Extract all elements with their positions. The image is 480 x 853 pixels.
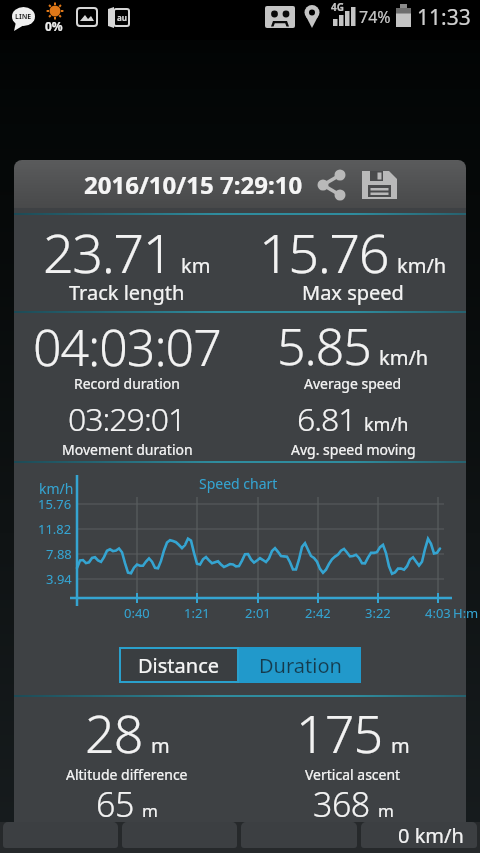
staticText: 2:42 <box>305 604 331 622</box>
staticText: m <box>142 799 158 822</box>
staticText: 1:21 <box>184 604 210 622</box>
staticText: m <box>378 799 394 822</box>
staticText: 23.71 <box>43 215 173 279</box>
staticText: 03:29:01 <box>68 397 186 437</box>
staticText: 368 <box>313 781 370 817</box>
staticText: Vertical ascent <box>305 765 401 783</box>
staticText: Record duration <box>74 374 180 393</box>
staticText: Average speed <box>304 374 402 393</box>
staticText: km/h <box>39 479 74 498</box>
staticText: km/h <box>397 252 447 279</box>
staticText: km/h <box>379 344 429 371</box>
staticText: 6.81 <box>297 397 356 437</box>
staticText: Speed chart <box>199 474 278 493</box>
button[interactable] <box>362 169 397 201</box>
staticText: 65 <box>96 781 134 817</box>
staticText: 3:22 <box>365 604 391 622</box>
staticText: 11:33 <box>417 3 471 32</box>
button[interactable]: Distance <box>119 647 239 683</box>
staticText: km <box>181 252 211 279</box>
button[interactable] <box>318 170 346 200</box>
staticText: Movement duration <box>62 440 193 459</box>
staticText: 3.94 <box>46 570 72 588</box>
staticText: 15.76 <box>38 495 72 513</box>
button[interactable]: 0 km/h <box>361 822 477 848</box>
staticText: 11.82 <box>38 520 72 538</box>
staticText: LINE <box>15 12 32 22</box>
staticText: 7.88 <box>46 545 72 563</box>
staticText: Track length <box>69 279 185 305</box>
button[interactable]: Duration <box>239 647 361 683</box>
staticText: m <box>151 732 170 759</box>
staticText: 2016/10/15 7:29:10 <box>84 168 303 201</box>
staticText: 28 <box>85 697 143 765</box>
staticText: Avg. speed moving <box>291 440 416 459</box>
staticText: Distance <box>138 652 220 679</box>
staticText: 04:03:07 <box>33 313 221 369</box>
staticText: au <box>117 12 127 23</box>
button[interactable]: 2016/10/15 7:29:10 <box>14 160 466 208</box>
staticText: km/h <box>364 412 409 437</box>
staticText: H:m <box>453 604 479 622</box>
staticText: 0 km/h <box>398 822 464 848</box>
staticText: 2:01 <box>245 604 271 622</box>
staticText: 0:40 <box>124 604 150 622</box>
staticText: m <box>391 732 410 759</box>
staticText: 5.85 <box>277 312 371 368</box>
staticText: Max speed <box>302 279 404 305</box>
staticText: 0% <box>45 18 63 34</box>
staticText: 4G <box>331 0 344 14</box>
staticText: Altitude difference <box>66 765 188 783</box>
staticText: 4:03 <box>425 604 451 622</box>
staticText: 175 <box>296 697 383 765</box>
staticText: 74% <box>359 6 391 28</box>
staticText: 15.76 <box>259 215 389 279</box>
staticText: Duration <box>259 652 342 679</box>
